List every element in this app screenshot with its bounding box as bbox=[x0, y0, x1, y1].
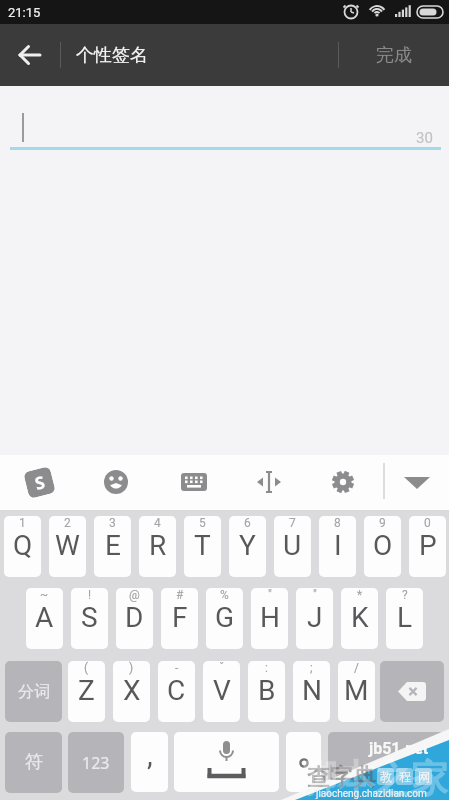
staticText: N bbox=[302, 674, 322, 707]
button[interactable]: 9 bbox=[364, 516, 401, 577]
button[interactable] bbox=[94, 460, 138, 504]
staticText: 9 bbox=[379, 516, 386, 530]
button[interactable]: ) bbox=[113, 661, 150, 722]
staticText: H bbox=[260, 601, 280, 634]
staticText: 查字典 bbox=[307, 763, 376, 792]
button[interactable] bbox=[286, 732, 321, 792]
staticText: G bbox=[215, 601, 235, 634]
staticText: ! bbox=[88, 588, 92, 602]
staticText: P bbox=[419, 529, 437, 562]
button[interactable]: 7 bbox=[274, 516, 311, 577]
staticText: ( bbox=[84, 661, 89, 675]
staticText: " bbox=[268, 588, 272, 602]
staticText: " bbox=[313, 588, 317, 602]
staticText: L bbox=[397, 601, 413, 634]
staticText: F bbox=[172, 601, 188, 634]
staticText: I bbox=[334, 529, 342, 562]
staticText: / bbox=[354, 661, 359, 675]
button[interactable]: 3 bbox=[94, 516, 131, 577]
button[interactable]: ~ bbox=[26, 588, 63, 649]
staticText: 分词 bbox=[18, 682, 50, 702]
button[interactable] bbox=[395, 460, 439, 504]
button[interactable] bbox=[247, 460, 291, 504]
button[interactable]: # bbox=[161, 588, 198, 649]
staticText: % bbox=[220, 588, 229, 602]
staticText: jb51.net bbox=[369, 739, 429, 758]
staticText: 21:15 bbox=[8, 5, 41, 20]
button[interactable]: 完成 bbox=[339, 24, 449, 86]
staticText: - bbox=[175, 661, 179, 675]
staticText: O bbox=[373, 529, 393, 562]
staticText: * bbox=[357, 588, 363, 602]
button[interactable]: ( bbox=[68, 661, 105, 722]
button[interactable]: ? bbox=[386, 588, 423, 649]
staticText: 7 bbox=[289, 516, 296, 530]
staticText: S bbox=[32, 470, 48, 495]
button[interactable] bbox=[172, 460, 216, 504]
staticText: 2 bbox=[64, 516, 71, 530]
staticText: 30 bbox=[416, 129, 433, 147]
staticText: V bbox=[213, 674, 231, 707]
button[interactable] bbox=[174, 732, 279, 792]
staticText: C bbox=[167, 674, 186, 707]
button[interactable]: % bbox=[206, 588, 243, 649]
button[interactable]: 6 bbox=[229, 516, 266, 577]
staticText: 符 bbox=[25, 751, 43, 774]
button[interactable]: - bbox=[158, 661, 195, 722]
staticText: B bbox=[258, 674, 276, 707]
button[interactable]: 4 bbox=[139, 516, 176, 577]
staticText: Z bbox=[78, 674, 95, 707]
staticText: 4 bbox=[154, 516, 161, 530]
button[interactable]: * bbox=[341, 588, 378, 649]
staticText: W bbox=[55, 529, 80, 562]
button[interactable]: , bbox=[131, 732, 168, 792]
button[interactable] bbox=[0, 86, 449, 156]
staticText: D bbox=[125, 601, 144, 634]
staticText: 123 bbox=[82, 752, 110, 774]
button[interactable]: : bbox=[248, 661, 285, 722]
button[interactable]: @ bbox=[116, 588, 153, 649]
button[interactable] bbox=[321, 460, 365, 504]
button[interactable]: 5 bbox=[184, 516, 221, 577]
staticText: 网 bbox=[418, 769, 430, 784]
button[interactable] bbox=[0, 24, 60, 86]
button[interactable]: S bbox=[23, 466, 56, 499]
staticText: jiaocheng.chazidian.com bbox=[316, 788, 427, 800]
button[interactable]: 0 bbox=[409, 516, 446, 577]
staticText: J bbox=[307, 601, 323, 634]
staticText: ˇ bbox=[219, 661, 225, 675]
staticText: E bbox=[105, 529, 121, 562]
staticText: 5 bbox=[199, 516, 206, 530]
button[interactable] bbox=[380, 661, 444, 722]
staticText: Y bbox=[239, 529, 256, 562]
staticText: ; bbox=[310, 661, 313, 675]
button[interactable]: / bbox=[338, 661, 375, 722]
button[interactable]: ; bbox=[293, 661, 330, 722]
staticText: 3 bbox=[109, 516, 116, 530]
staticText: 0 bbox=[424, 516, 431, 530]
staticText: ~ bbox=[40, 588, 49, 602]
staticText: # bbox=[176, 588, 184, 602]
staticText: 程 bbox=[399, 769, 411, 784]
button[interactable]: 1 bbox=[4, 516, 41, 577]
button[interactable]: 123 bbox=[68, 732, 124, 793]
staticText: ? bbox=[402, 588, 408, 602]
staticText: ) bbox=[129, 661, 134, 675]
staticText: K bbox=[351, 601, 369, 634]
button[interactable]: 符 bbox=[5, 732, 62, 793]
staticText: 6 bbox=[244, 516, 251, 530]
button[interactable]: ˇ bbox=[203, 661, 240, 722]
staticText: S bbox=[81, 601, 98, 634]
button[interactable]: ! bbox=[71, 588, 108, 649]
button[interactable]: 分词 bbox=[5, 661, 62, 722]
staticText: A bbox=[35, 601, 54, 634]
staticText: T bbox=[194, 529, 211, 562]
button[interactable]: " bbox=[251, 588, 288, 649]
staticText: 教 bbox=[380, 769, 392, 784]
button[interactable]: " bbox=[296, 588, 333, 649]
button[interactable]: 8 bbox=[319, 516, 356, 577]
staticText: U bbox=[283, 529, 302, 562]
button[interactable] bbox=[328, 732, 444, 792]
staticText: 8 bbox=[334, 516, 341, 530]
button[interactable]: 2 bbox=[49, 516, 86, 577]
